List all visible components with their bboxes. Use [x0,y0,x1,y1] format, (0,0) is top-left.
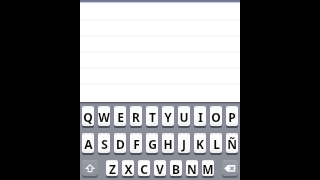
staticText: B [172,161,180,176]
button[interactable]: C [138,160,150,176]
button[interactable]: M [202,160,214,176]
staticText: W [98,109,110,125]
button[interactable]: Q [82,106,94,126]
staticText: C [140,161,148,176]
button[interactable]: P [226,106,238,126]
button[interactable]: Shift [82,160,98,176]
staticText: G [148,136,157,152]
button[interactable]: V [154,160,166,176]
staticText: E [117,109,124,125]
staticText: L [213,136,220,152]
button[interactable]: W [98,106,110,126]
button[interactable]: K [194,133,206,153]
button[interactable]: A [82,133,94,153]
staticText: N [187,161,197,176]
staticText: Y [164,109,172,125]
staticText: D [116,136,125,152]
button[interactable]: B [170,160,182,176]
staticText: A [84,136,93,152]
staticText: K [196,136,204,152]
button[interactable]: Z [106,160,118,176]
button[interactable]: I [194,106,206,126]
staticText: H [163,136,173,152]
button[interactable]: X [122,160,134,176]
button[interactable]: T [146,106,158,126]
staticText: R [132,109,140,125]
button[interactable]: Y [162,106,174,126]
staticText: F [133,136,140,152]
button[interactable]: D [114,133,126,153]
staticText: J [182,136,186,152]
button[interactable]: Ñ [226,133,238,153]
staticText: U [179,109,189,125]
staticText: Q [83,109,93,125]
button[interactable]: O [210,106,222,126]
staticText: X [124,161,133,176]
staticText: S [101,136,108,152]
button[interactable]: H [162,133,174,153]
staticText: P [228,109,236,125]
staticText: O [211,109,221,125]
button[interactable]: S [98,133,110,153]
button[interactable]: G [146,133,158,153]
staticText: T [149,109,156,125]
button[interactable]: J [178,133,190,153]
staticText: I [198,109,203,125]
staticText: M [202,161,214,176]
button[interactable]: R [130,106,142,126]
staticText: Ñ [227,136,237,152]
button[interactable]: E [114,106,126,126]
button[interactable]: L [210,133,222,153]
button[interactable]: Backspace [222,160,238,176]
button[interactable]: N [186,160,198,176]
staticText: V [156,161,164,176]
button[interactable]: U [178,106,190,126]
staticText: Z [109,161,116,176]
button[interactable]: F [130,133,142,153]
